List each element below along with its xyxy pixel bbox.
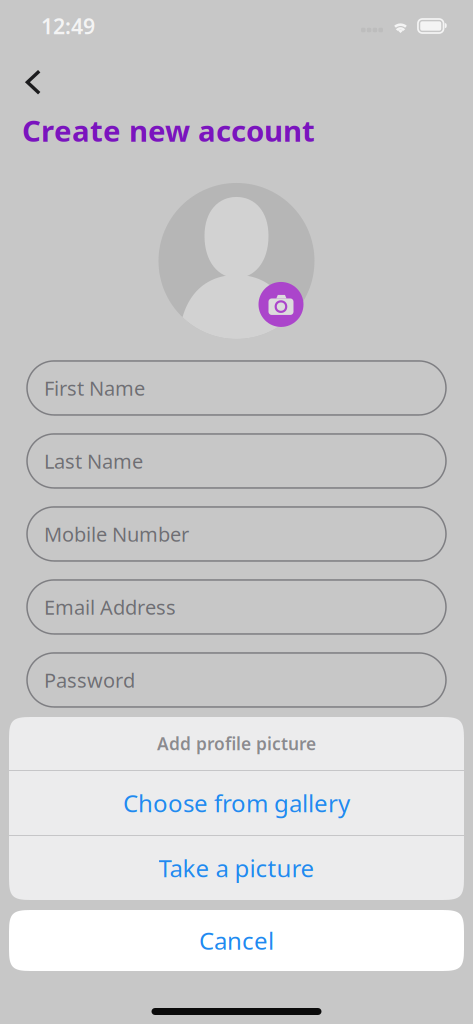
staticText: Take a picture: [158, 852, 314, 884]
staticText: Cancel: [199, 925, 274, 956]
staticText: 12:49: [41, 12, 95, 40]
staticText: Last Name: [44, 448, 143, 474]
staticText: Create new account: [22, 111, 315, 150]
staticText: Choose from gallery: [123, 787, 350, 819]
staticText: Password: [44, 667, 135, 693]
button[interactable]: Add profile picture: [158, 183, 314, 339]
button[interactable]: Cancel: [9, 910, 464, 971]
button[interactable]: Choose from gallery: [9, 771, 464, 835]
staticText: Add profile picture: [157, 732, 316, 755]
button[interactable]: Password: [27, 653, 446, 707]
button[interactable]: Mobile Number: [27, 507, 446, 561]
staticText: Mobile Number: [44, 521, 189, 547]
staticText: Email Address: [44, 594, 176, 620]
button[interactable]: Email Address: [27, 580, 446, 634]
button[interactable]: First Name: [27, 361, 446, 415]
staticText: First Name: [44, 375, 145, 401]
button[interactable]: Take a picture: [9, 836, 464, 900]
button[interactable]: Last Name: [27, 434, 446, 488]
button[interactable]: Back: [0, 52, 62, 102]
